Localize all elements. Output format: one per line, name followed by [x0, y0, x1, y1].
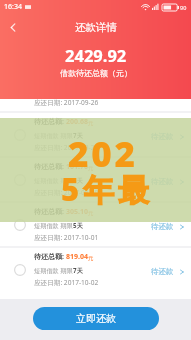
- staticText: 元: [88, 120, 94, 127]
- staticText: 待还总额:: [34, 117, 66, 127]
- staticText: 短期借款 期限: [34, 176, 73, 184]
- button[interactable]: 待还总额:: [0, 158, 191, 201]
- staticText: 7天: [73, 266, 83, 274]
- staticText: 元: [88, 75, 94, 82]
- staticText: 待还总额:: [34, 72, 66, 82]
- staticText: 短期借款 期限: [34, 221, 73, 229]
- staticText: 待还款: [151, 267, 174, 276]
- staticText: 应还日期: 2017-10-02: [34, 278, 99, 287]
- staticText: 待还款: [151, 177, 174, 186]
- staticText: 立即还款: [76, 312, 116, 325]
- staticText: 101.70: [66, 162, 88, 172]
- staticText: 短期借款 期限: [34, 266, 73, 274]
- button[interactable]: 待还总额:: [0, 113, 191, 156]
- staticText: 16:34: [4, 2, 22, 12]
- button[interactable]: 立即还款: [33, 307, 159, 330]
- staticText: 还款详情: [75, 21, 117, 34]
- staticText: 202: [68, 130, 138, 178]
- staticText: 借款待还总额（元）: [60, 68, 132, 78]
- button[interactable]: Back: [0, 14, 26, 40]
- staticText: 5天: [73, 221, 83, 229]
- staticText: 5年最: [61, 168, 154, 210]
- staticText: 待还款: [151, 222, 174, 231]
- staticText: 待还款: [151, 132, 174, 141]
- staticText: 应还日期: 2017-10-01: [34, 233, 99, 242]
- staticText: 305.10: [66, 207, 88, 217]
- staticText: 短期借款 期限: [34, 131, 73, 139]
- staticText: 元: [88, 210, 94, 217]
- staticText: 200.68: [66, 117, 88, 127]
- staticText: 5天: [73, 176, 83, 184]
- button[interactable]: 待还总额:: [0, 248, 191, 291]
- staticText: 90: [180, 4, 187, 11]
- staticText: 819.04: [66, 252, 88, 262]
- staticText: 待还总额:: [34, 162, 66, 172]
- staticText: 应还日期: 2017-09-30: [34, 188, 99, 197]
- button[interactable]: 待还总额:: [0, 203, 191, 246]
- staticText: 应还日期: 2017-09-26: [34, 98, 99, 107]
- button[interactable]: 待还总额:: [0, 68, 191, 111]
- staticText: 待还总额:: [34, 207, 66, 217]
- staticText: 元: [88, 255, 94, 262]
- staticText: 7天: [73, 131, 83, 139]
- staticText: 2429.92: [65, 44, 127, 66]
- staticText: 待还总额:: [34, 252, 66, 262]
- staticText: 应还日期: 2017-09-28: [34, 143, 99, 152]
- staticText: 元: [88, 165, 94, 172]
- staticText: 168.30: [66, 72, 88, 82]
